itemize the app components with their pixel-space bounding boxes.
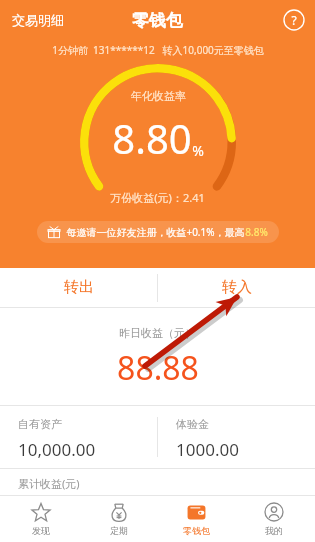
staticText: 累计收益(元) bbox=[18, 476, 80, 491]
button[interactable]: 自有资产 bbox=[0, 406, 157, 468]
staticText: 1分钟前 131******12 转入10,000元至零钱包 bbox=[52, 43, 264, 57]
button[interactable]: 转出 bbox=[0, 268, 157, 307]
staticText: 我的 bbox=[265, 525, 283, 536]
staticText: 转出 bbox=[64, 278, 94, 297]
button[interactable]: 定期 bbox=[82, 496, 156, 542]
staticText: 1000.00 bbox=[176, 438, 239, 461]
button[interactable]: 体验金 bbox=[158, 406, 315, 468]
staticText: 10,000.00 bbox=[18, 438, 96, 461]
staticText: 零钱包 bbox=[183, 525, 210, 536]
staticText: 零钱包 bbox=[132, 10, 183, 31]
staticText: 每邀请一位好友注册，收益+0.1%，最高 bbox=[66, 225, 245, 239]
button[interactable]: 帮助 bbox=[283, 9, 305, 31]
staticText: 体验金 bbox=[176, 417, 209, 431]
button[interactable]: 交易明细 bbox=[8, 6, 68, 34]
staticText: 转入 bbox=[222, 278, 252, 297]
staticText: 定期 bbox=[110, 525, 128, 536]
button[interactable]: 我的 bbox=[237, 496, 311, 542]
staticText: 昨日收益（元） bbox=[119, 326, 196, 340]
staticText: 88.88 bbox=[117, 346, 199, 390]
staticText: 发现 bbox=[32, 525, 50, 536]
staticText: 年化收益率 bbox=[131, 89, 186, 103]
staticText: 8.80 bbox=[112, 111, 192, 165]
staticText: 自有资产 bbox=[18, 417, 62, 431]
staticText: 万份收益(元)：2.41 bbox=[110, 190, 205, 205]
staticText: 交易明细 bbox=[12, 12, 64, 28]
staticText: 8.8% bbox=[245, 225, 268, 239]
button[interactable]: 每邀请一位好友注册，收益+0.1%，最高 bbox=[37, 221, 279, 243]
staticText: ? bbox=[291, 12, 297, 28]
staticText: % bbox=[192, 141, 204, 160]
button[interactable]: 零钱包 bbox=[159, 496, 233, 542]
button[interactable]: 发现 bbox=[4, 496, 78, 542]
button[interactable]: 转入 bbox=[158, 268, 315, 307]
button[interactable]: 累计收益(元) bbox=[0, 469, 315, 495]
